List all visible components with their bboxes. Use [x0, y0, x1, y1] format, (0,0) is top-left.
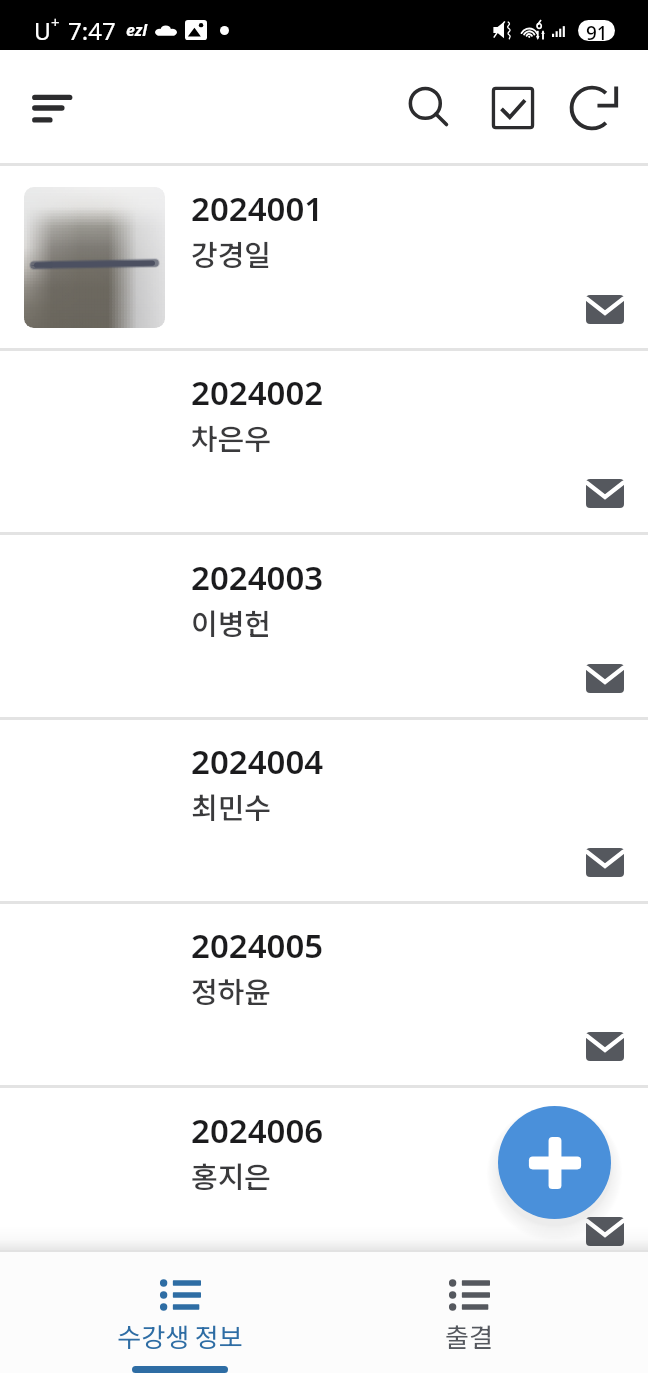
button[interactable]: 2024005	[0, 903, 648, 1087]
button[interactable]: 수강생 정보	[35, 1250, 324, 1373]
staticText: 정하윤	[191, 969, 272, 1011]
staticText: 2024006	[191, 1108, 324, 1153]
staticText: 2024005	[191, 923, 324, 968]
button[interactable]: 2024003	[0, 535, 648, 719]
staticText: 차은우	[191, 416, 272, 458]
button[interactable]: Send mail	[577, 834, 633, 890]
staticText: 2024004	[191, 739, 324, 784]
staticText: 최민수	[191, 785, 272, 827]
button[interactable]: 2024004	[0, 719, 648, 903]
staticText: 2024003	[191, 555, 324, 600]
staticText: 7:47	[68, 14, 116, 47]
button[interactable]: Send mail	[577, 1018, 633, 1074]
button[interactable]: 2024001	[0, 166, 648, 350]
button[interactable]: 2024002	[0, 350, 648, 534]
button[interactable]: Add student	[498, 1106, 611, 1219]
button[interactable]: Select all	[467, 62, 559, 154]
staticText: 수강생 정보	[117, 1317, 243, 1355]
staticText: 2024001	[191, 186, 324, 231]
staticText: U	[34, 15, 51, 46]
staticText: 홍지은	[191, 1154, 272, 1196]
button[interactable]: Refresh	[546, 62, 638, 154]
button[interactable]: Sort	[9, 62, 101, 154]
button[interactable]: 2024006	[0, 1088, 648, 1272]
button[interactable]: Search	[383, 62, 475, 154]
button[interactable]: 출결	[324, 1250, 613, 1373]
staticText: 출결	[445, 1317, 493, 1355]
staticText: 2024002	[191, 370, 324, 415]
button[interactable]: Send mail	[577, 281, 633, 337]
button[interactable]: Send mail	[577, 465, 633, 521]
staticText: 강경일	[191, 232, 272, 274]
button[interactable]: Send mail	[577, 1203, 633, 1259]
button[interactable]: Send mail	[577, 650, 633, 706]
staticText: 91	[586, 20, 608, 41]
staticText: +	[51, 12, 60, 32]
staticText: 이병헌	[191, 601, 272, 643]
staticText: ezl	[126, 19, 148, 41]
